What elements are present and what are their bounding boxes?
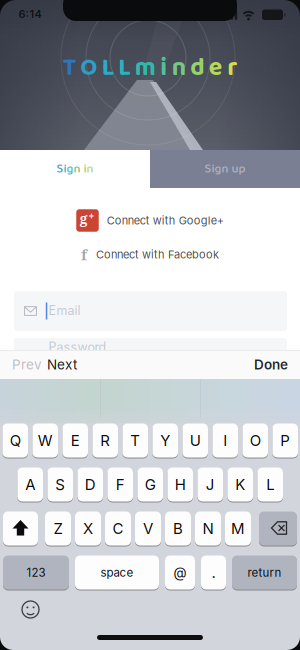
staticText: Password <box>48 339 106 355</box>
button[interactable]: A <box>17 467 43 502</box>
staticText: L <box>118 48 130 88</box>
staticText: @ <box>173 564 186 581</box>
staticText: n <box>73 159 80 179</box>
button[interactable]: . <box>201 555 226 590</box>
button[interactable]: S <box>47 467 73 502</box>
button[interactable]: L <box>257 467 283 502</box>
staticText: O <box>80 48 97 88</box>
staticText: 123 <box>26 565 45 579</box>
staticText: I <box>223 431 227 449</box>
staticText: f <box>81 244 87 265</box>
staticText: W <box>38 431 53 449</box>
button[interactable]: Q <box>2 423 28 458</box>
staticText: m <box>135 48 156 88</box>
button[interactable]: J <box>197 467 223 502</box>
button[interactable]: C <box>105 511 131 546</box>
staticText: T <box>63 48 76 88</box>
staticText: return <box>247 565 281 579</box>
button[interactable]: S <box>0 150 150 188</box>
staticText: U <box>190 431 201 449</box>
button[interactable]: U <box>182 423 208 458</box>
staticText: H <box>175 475 186 493</box>
button[interactable]: Done <box>254 350 288 379</box>
staticText: E <box>71 431 80 449</box>
button[interactable]: G <box>137 467 163 502</box>
button[interactable]: R <box>92 423 118 458</box>
staticText: space <box>100 565 133 579</box>
button[interactable]: @ <box>165 555 195 590</box>
button[interactable]: T <box>122 423 148 458</box>
staticText: Email <box>48 303 80 318</box>
staticText: L <box>102 48 114 88</box>
staticText: i <box>80 159 86 179</box>
button[interactable]: W <box>32 423 58 458</box>
staticText: G <box>145 475 156 493</box>
button[interactable]: V <box>135 511 161 546</box>
staticText: V <box>143 519 153 537</box>
staticText: K <box>235 475 245 493</box>
button[interactable]: O <box>242 423 268 458</box>
staticText: 6:14 <box>18 7 41 21</box>
staticText: Connect with Facebook <box>96 248 219 261</box>
staticText: O <box>250 431 261 449</box>
button[interactable]: Z <box>45 511 71 546</box>
staticText: Next <box>47 356 77 373</box>
staticText: Done <box>254 356 288 373</box>
button[interactable]: return <box>232 555 297 590</box>
staticText: S <box>55 475 65 493</box>
staticText: D <box>85 475 96 493</box>
staticText: Q <box>10 431 21 449</box>
button[interactable]: Password <box>14 338 287 378</box>
staticText: i <box>63 159 66 179</box>
staticText: F <box>116 475 125 493</box>
staticText: C <box>112 519 123 537</box>
staticText: T <box>130 431 140 449</box>
staticText: B <box>173 519 183 537</box>
button[interactable]: Shift <box>3 511 38 546</box>
staticText: Z <box>53 519 62 537</box>
staticText: Prev <box>12 356 42 373</box>
button[interactable]: Prev <box>12 350 42 379</box>
staticText: M <box>231 519 245 537</box>
button[interactable]: F <box>107 467 133 502</box>
staticText: n <box>172 48 186 88</box>
staticText: N <box>202 519 213 537</box>
staticText: r <box>227 48 237 88</box>
staticText: L <box>266 475 274 493</box>
button[interactable]: H <box>167 467 193 502</box>
staticText: Y <box>160 431 170 449</box>
staticText: R <box>100 431 110 449</box>
staticText: Connect with Google+ <box>107 214 224 227</box>
button[interactable]: I <box>212 423 238 458</box>
button[interactable]: g <box>76 209 224 232</box>
staticText: X <box>83 519 93 537</box>
button[interactable]: K <box>227 467 253 502</box>
button[interactable]: P <box>272 423 298 458</box>
staticText: n <box>86 159 93 179</box>
staticText: g <box>66 159 73 179</box>
button[interactable]: Email <box>14 291 287 331</box>
button[interactable]: D <box>77 467 103 502</box>
button[interactable]: Sign up <box>150 150 300 188</box>
staticText: g <box>80 209 88 228</box>
staticText: P <box>280 431 290 449</box>
button[interactable]: M <box>225 511 251 546</box>
button[interactable]: space <box>75 555 159 590</box>
button[interactable]: Delete <box>259 511 297 546</box>
staticText: d <box>190 48 204 88</box>
button[interactable]: Y <box>152 423 178 458</box>
staticText: J <box>206 475 215 493</box>
staticText: Sign up <box>204 159 245 179</box>
button[interactable]: X <box>75 511 101 546</box>
button[interactable]: B <box>165 511 191 546</box>
button[interactable]: 123 <box>3 555 69 590</box>
staticText: i <box>160 48 167 88</box>
button[interactable]: Emoji <box>21 600 40 619</box>
staticText: S <box>56 159 63 179</box>
button[interactable]: Next <box>47 350 77 379</box>
staticText: + <box>88 209 94 221</box>
staticText: A <box>25 475 35 493</box>
button[interactable]: f <box>81 246 219 263</box>
button[interactable]: E <box>62 423 88 458</box>
button[interactable]: N <box>195 511 221 546</box>
